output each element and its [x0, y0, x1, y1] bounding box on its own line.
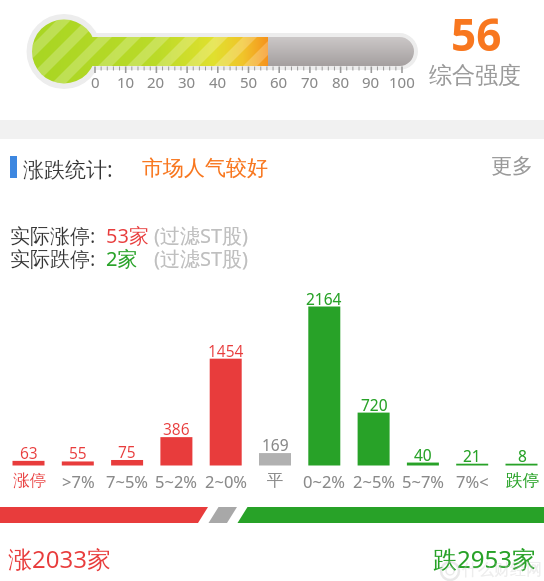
staticText: 7~5% — [106, 470, 149, 491]
staticText: 什么财经网 — [462, 560, 542, 580]
staticText: 63 — [20, 442, 38, 462]
staticText: 21 — [463, 445, 481, 465]
staticText: 跌2953家 — [433, 542, 536, 575]
staticText: 20 — [147, 72, 165, 89]
staticText: 5~2% — [155, 470, 198, 491]
staticText: 53家 — [106, 222, 149, 249]
staticText: 80 — [332, 72, 350, 89]
staticText: 0~2% — [303, 470, 346, 491]
staticText: 40 — [414, 444, 432, 464]
button[interactable]: 更多 — [433, 153, 533, 179]
staticText: 55 — [69, 442, 87, 462]
staticText: 1454 — [208, 340, 244, 360]
staticText: 10 — [117, 72, 135, 89]
staticText: 60 — [270, 72, 288, 89]
staticText: 涨2033家 — [8, 542, 111, 575]
staticText: 跌停 — [506, 470, 539, 491]
staticText: 8 — [518, 445, 527, 465]
staticText: 56 — [451, 4, 502, 54]
staticText: 7%< — [456, 470, 489, 491]
staticText: 75 — [118, 441, 136, 461]
staticText: 90 — [362, 72, 380, 89]
staticText: 70 — [301, 72, 319, 89]
staticText: 40 — [209, 72, 227, 89]
staticText: >7% — [62, 470, 95, 491]
staticText: 2164 — [306, 288, 342, 308]
staticText: 2~5% — [353, 470, 396, 491]
staticText: 2家 — [106, 245, 138, 272]
staticText: 市场人气较好 — [142, 155, 268, 181]
staticText: 更多 — [491, 153, 533, 179]
staticText: 50 — [240, 72, 258, 89]
staticText: (过滤ST股) — [154, 245, 249, 272]
staticText: 5~7% — [402, 470, 445, 491]
staticText: 169 — [262, 434, 289, 454]
staticText: 涨停 — [13, 470, 46, 491]
staticText: 平 — [267, 470, 284, 491]
staticText: 2~0% — [205, 470, 248, 491]
staticText: (过滤ST股) — [154, 222, 249, 249]
staticText: 0 — [91, 72, 100, 89]
staticText: 386 — [163, 418, 190, 438]
staticText: 30 — [178, 72, 196, 89]
staticText: 720 — [361, 394, 388, 414]
staticText: 实际跌停: — [10, 245, 96, 272]
staticText: 实际涨停: — [10, 222, 96, 249]
staticText: 100 — [389, 72, 415, 89]
staticText: 涨跌统计: — [23, 155, 113, 184]
staticText: 综合强度 — [429, 61, 521, 87]
